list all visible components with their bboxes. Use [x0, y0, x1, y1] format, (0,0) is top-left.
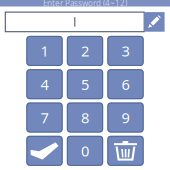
button[interactable]: 6: [107, 69, 144, 99]
button[interactable]: 7: [26, 102, 63, 132]
staticText: Enter Password (4~12): [43, 0, 127, 8]
button[interactable]: 0: [67, 136, 103, 166]
staticText: 5: [81, 74, 89, 94]
button[interactable]: 9: [107, 102, 144, 132]
button[interactable]: 3: [107, 36, 144, 66]
staticText: 0: [81, 141, 89, 161]
staticText: 1: [40, 41, 48, 61]
staticText: 8: [81, 108, 89, 127]
staticText: 6: [121, 74, 129, 94]
staticText: 7: [40, 108, 48, 127]
button[interactable]: Edit: [144, 12, 165, 32]
button[interactable]: 5: [67, 69, 103, 99]
button[interactable]: 4: [26, 69, 63, 99]
button[interactable]: Confirm: [26, 136, 63, 166]
button[interactable]: 1: [26, 36, 63, 66]
staticText: 3: [121, 41, 129, 61]
button[interactable]: 2: [67, 36, 103, 66]
staticText: 2: [81, 41, 89, 61]
button[interactable]: 8: [67, 102, 103, 132]
staticText: 4: [40, 74, 48, 94]
staticText: 9: [121, 108, 129, 127]
button[interactable]: Delete: [107, 136, 144, 166]
